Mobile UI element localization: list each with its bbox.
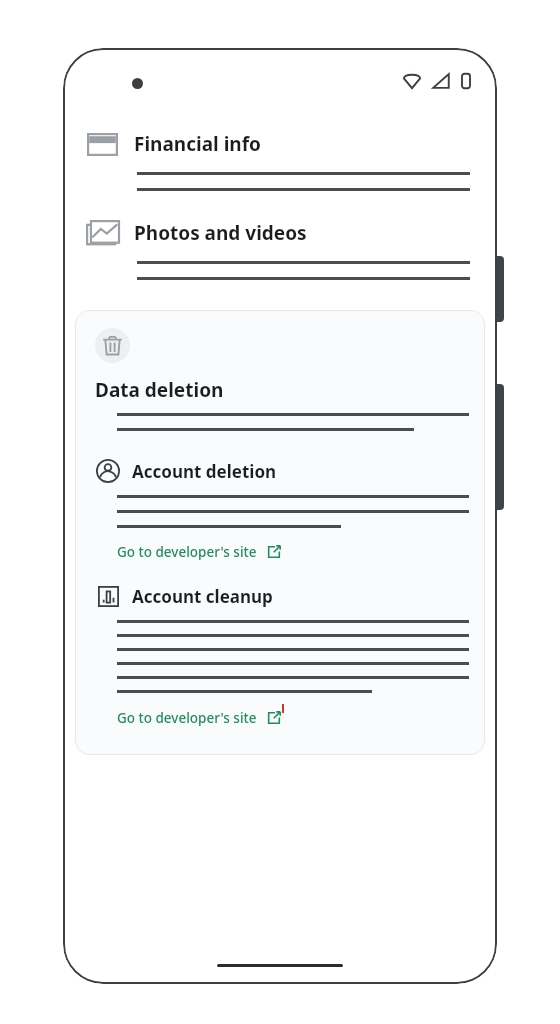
staticText: Financial info [134, 131, 261, 157]
staticText: Photos and videos [134, 220, 307, 246]
button[interactable]: Financial info [63, 124, 497, 191]
staticText: Go to developer's site [117, 543, 257, 561]
button[interactable]: Photos and videos [63, 213, 497, 280]
staticText: Account deletion [132, 460, 277, 483]
staticText: Account cleanup [132, 585, 273, 608]
other: Battery [461, 72, 471, 90]
other: Wi-Fi [403, 72, 421, 90]
button[interactable]: Account deletion [95, 458, 469, 484]
other: Signal [432, 72, 450, 90]
staticText: Go to developer's site [117, 709, 257, 727]
staticText: Data deletion [95, 377, 224, 403]
button[interactable]: Account cleanup [95, 583, 469, 609]
button[interactable]: Go to developer's site [117, 541, 281, 563]
button[interactable]: Go to developer's site [117, 707, 281, 729]
